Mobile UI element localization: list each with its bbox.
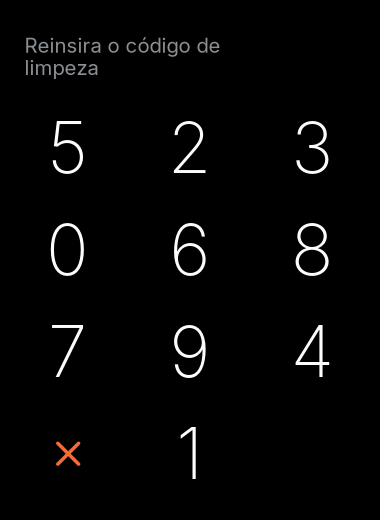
- staticText: 4: [291, 309, 334, 394]
- button[interactable]: 0: [6, 198, 129, 300]
- staticText: 0: [46, 207, 89, 292]
- button[interactable]: 2: [129, 96, 251, 198]
- button[interactable]: 9: [129, 300, 251, 402]
- staticText: 9: [169, 309, 210, 394]
- staticText: 5: [47, 105, 88, 190]
- button[interactable]: 4: [251, 300, 373, 402]
- staticText: 6: [169, 207, 210, 292]
- staticText: Reinsira o código de limpeza: [24, 33, 220, 80]
- staticText: 2: [168, 105, 212, 190]
- button[interactable]: 6: [129, 198, 251, 300]
- button[interactable]: 1: [129, 402, 251, 504]
- staticText: 8: [291, 207, 334, 292]
- button[interactable]: 8: [251, 198, 373, 300]
- button[interactable]: 5: [6, 96, 129, 198]
- staticText: 7: [48, 309, 87, 394]
- button[interactable]: Cancel: [6, 402, 129, 504]
- button[interactable]: 3: [251, 96, 373, 198]
- button[interactable]: 7: [6, 300, 129, 402]
- staticText: 1: [176, 411, 203, 496]
- staticText: 3: [291, 105, 333, 190]
